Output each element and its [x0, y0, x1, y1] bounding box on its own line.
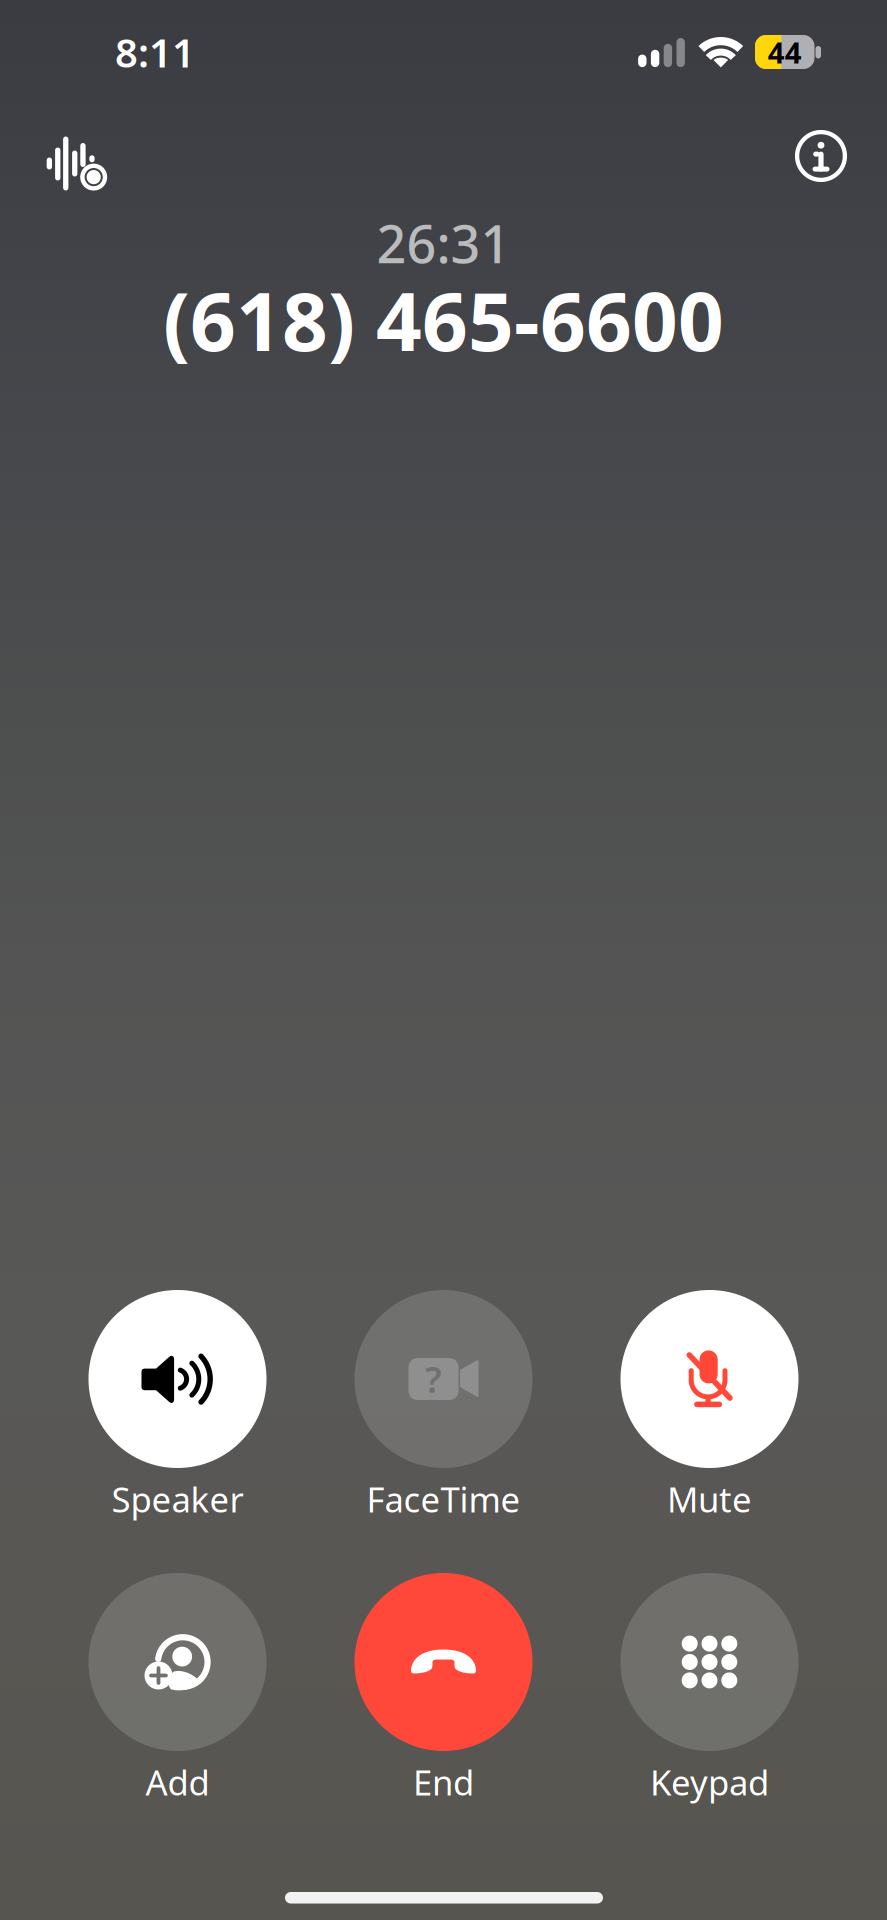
staticText: 44: [768, 32, 802, 71]
button[interactable]: Audio output: [27, 117, 127, 211]
staticText: Speaker: [111, 1476, 243, 1522]
button[interactable]: Keypad: [593, 1573, 825, 1817]
button[interactable]: End: [327, 1573, 559, 1817]
staticText: 8:11: [115, 25, 195, 78]
staticText: Mute: [667, 1476, 752, 1522]
staticText: ?: [425, 1355, 442, 1403]
staticText: FaceTime: [366, 1476, 520, 1522]
staticText: 26:31: [376, 208, 510, 278]
staticText: Keypad: [650, 1759, 769, 1805]
button[interactable]: Speaker: [61, 1290, 293, 1534]
button[interactable]: ?: [327, 1290, 559, 1534]
staticText: Add: [145, 1759, 209, 1805]
staticText: End: [413, 1759, 474, 1805]
button[interactable]: Mute: [593, 1290, 825, 1534]
button[interactable]: Add: [61, 1573, 293, 1817]
staticText: (618) 465-6600: [163, 267, 724, 373]
button[interactable]: Call details: [771, 106, 871, 206]
